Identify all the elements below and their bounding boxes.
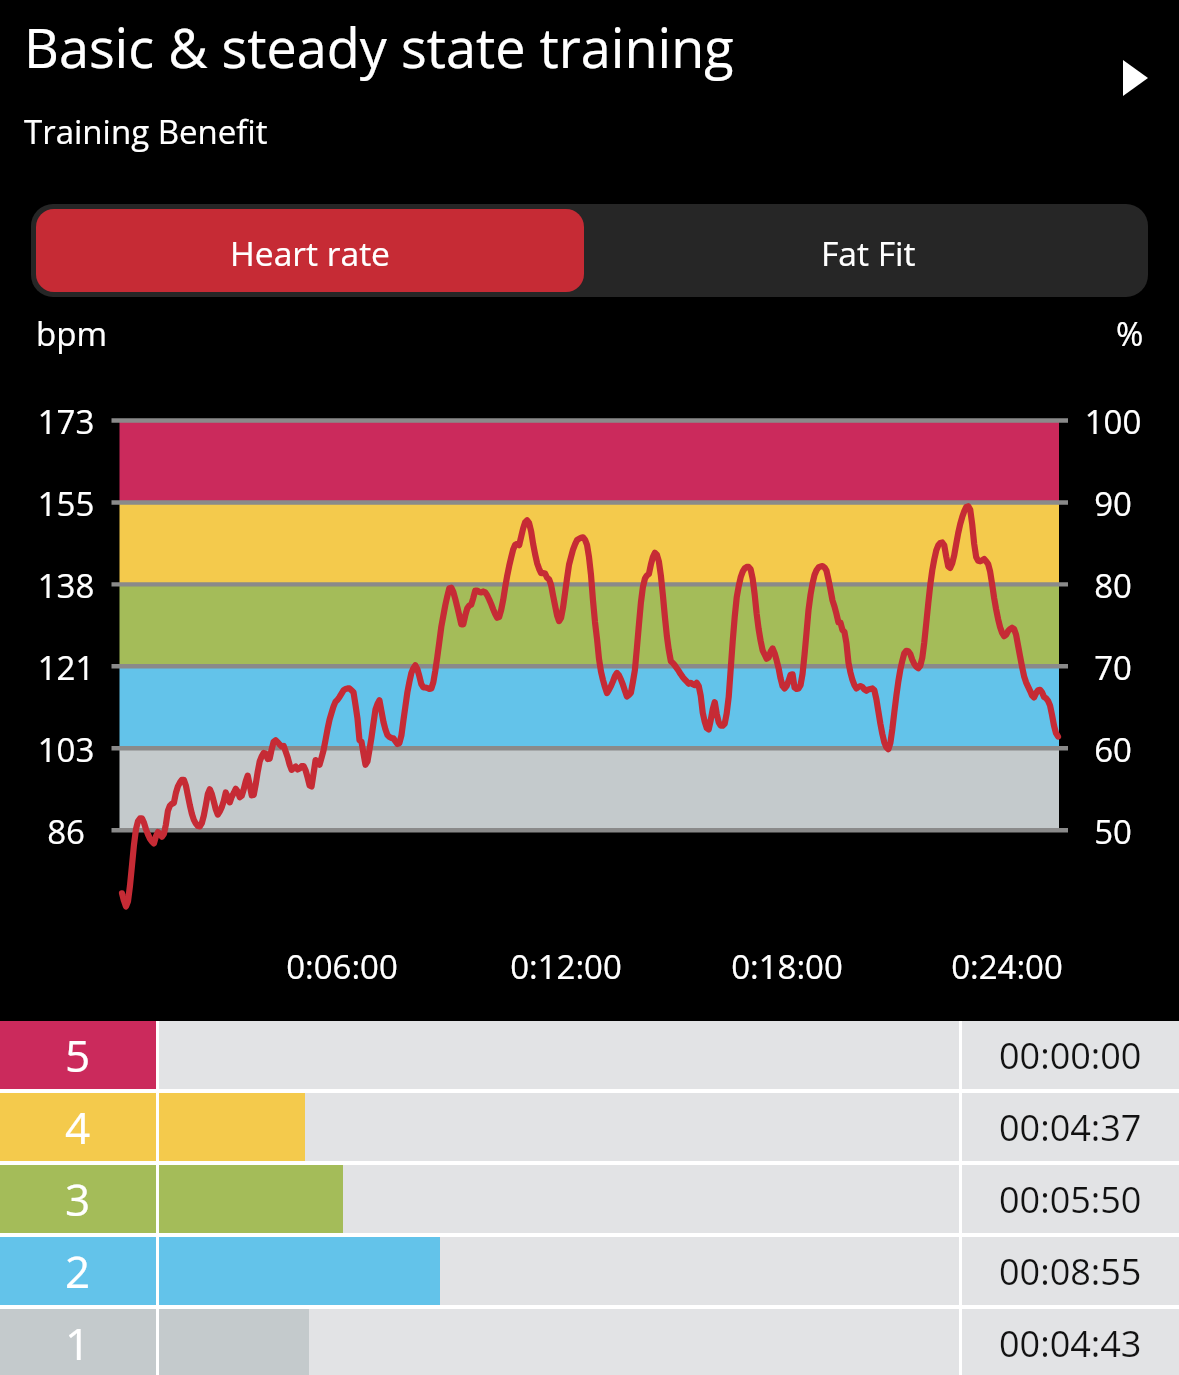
staticText: 1 xyxy=(65,1313,91,1373)
staticText: 138 xyxy=(0,563,132,608)
staticText: 103 xyxy=(0,727,132,772)
staticText: 173 xyxy=(0,399,132,444)
staticText: bpm xyxy=(36,311,107,356)
staticText: 155 xyxy=(0,481,132,526)
staticText: 5 xyxy=(65,1025,91,1085)
staticText: Basic & steady state training xyxy=(24,10,734,84)
staticText: 00:04:43 xyxy=(999,1319,1142,1368)
staticText: 00:05:50 xyxy=(999,1175,1142,1224)
button[interactable]: 3 xyxy=(0,1165,1179,1233)
staticText: 60 xyxy=(1047,727,1179,772)
staticText: 00:04:37 xyxy=(999,1103,1142,1152)
staticText: 3 xyxy=(65,1169,91,1229)
staticText: 0:12:00 xyxy=(446,944,686,989)
staticText: Heart rate xyxy=(230,230,390,276)
button[interactable]: Play xyxy=(1107,50,1163,106)
button[interactable]: 2 xyxy=(0,1237,1179,1305)
staticText: 00:08:55 xyxy=(999,1247,1142,1296)
button[interactable]: 1 xyxy=(0,1309,1179,1375)
staticText: 00:00:00 xyxy=(999,1031,1142,1080)
staticText: Training Benefit xyxy=(24,109,268,154)
staticText: 2 xyxy=(65,1241,91,1301)
button[interactable]: Heart rate xyxy=(36,209,584,292)
staticText: 86 xyxy=(0,809,132,854)
staticText: 0:24:00 xyxy=(887,944,1127,989)
staticText: 121 xyxy=(0,645,132,690)
staticText: 0:18:00 xyxy=(667,944,907,989)
button[interactable]: 4 xyxy=(0,1093,1179,1161)
staticText: Fat Fit xyxy=(821,230,916,276)
staticText: 4 xyxy=(65,1097,91,1157)
staticText: 80 xyxy=(1047,563,1179,608)
button[interactable]: Fat Fit xyxy=(589,204,1148,297)
staticText: 0:06:00 xyxy=(222,944,462,989)
staticText: 100 xyxy=(1047,399,1179,444)
staticText: 50 xyxy=(1047,809,1179,854)
staticText: % xyxy=(1116,311,1144,356)
staticText: 70 xyxy=(1047,645,1179,690)
button[interactable]: 5 xyxy=(0,1021,1179,1089)
staticText: 90 xyxy=(1047,481,1179,526)
